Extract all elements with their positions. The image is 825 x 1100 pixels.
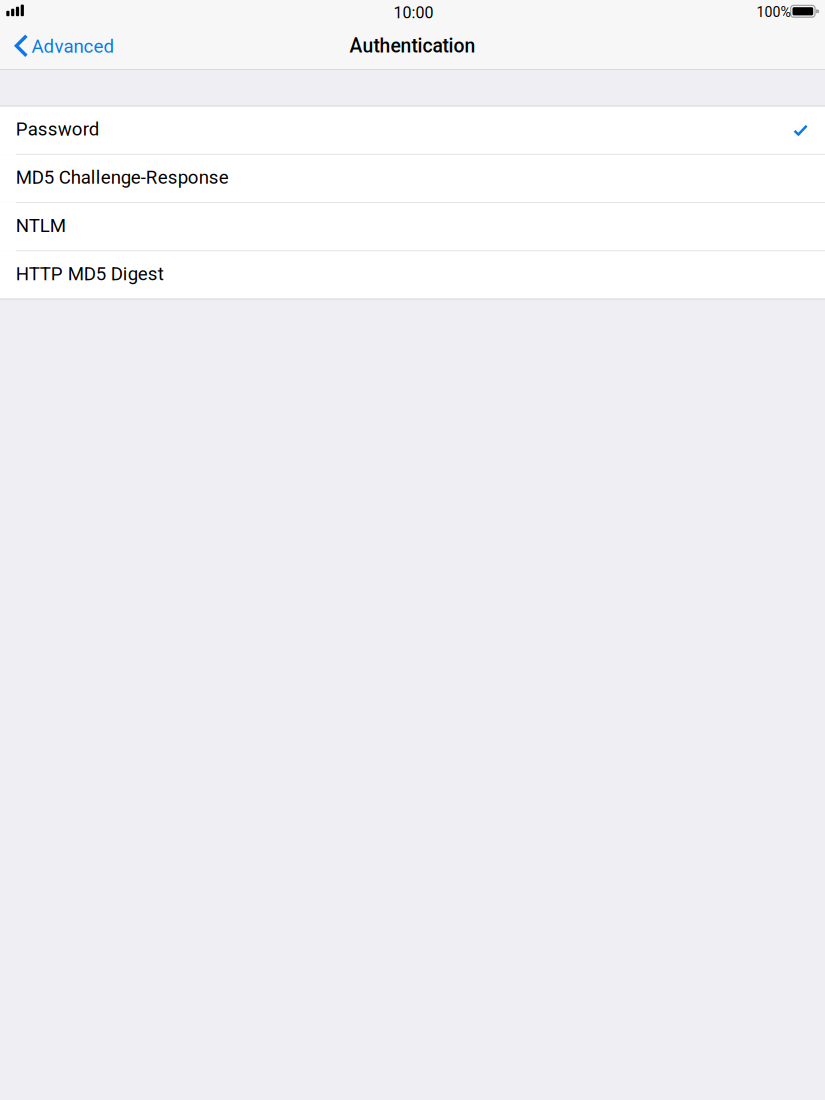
staticText: Authentication [349, 35, 475, 57]
staticText: 10:00 [393, 3, 433, 22]
button[interactable]: Password [0, 106, 825, 154]
staticText: NTLM [16, 215, 66, 237]
staticText: HTTP MD5 Digest [16, 263, 164, 285]
staticText: Password [16, 118, 100, 140]
staticText: MD5 Challenge-Response [16, 166, 229, 188]
button[interactable]: HTTP MD5 Digest [0, 251, 825, 299]
staticText: 100% [756, 4, 790, 20]
button[interactable]: Advanced [0, 24, 135, 69]
button[interactable]: NTLM [0, 202, 825, 251]
staticText: Advanced [32, 35, 115, 57]
button[interactable]: MD5 Challenge-Response [0, 154, 825, 202]
